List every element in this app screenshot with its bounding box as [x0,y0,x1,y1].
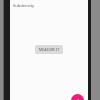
button[interactable]: Add measurement [71,94,84,100]
staticText: Subdensity [13,3,35,8]
button[interactable]: MEASURE IT [35,45,63,54]
staticText: MEASURE IT [39,47,60,52]
